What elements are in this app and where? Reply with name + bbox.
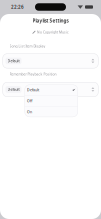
button[interactable]: On <box>24 106 78 117</box>
button[interactable]: Default <box>2 82 98 97</box>
button[interactable]: Default <box>2 53 98 68</box>
staticText: Off <box>27 98 32 103</box>
staticText: Playlist Settings <box>32 17 68 24</box>
staticText: Remember Playback Position <box>9 72 56 76</box>
staticText: Default <box>27 87 39 92</box>
staticText: No Copyright Music <box>37 30 69 34</box>
staticText: On <box>27 109 32 114</box>
button[interactable]: Off <box>24 95 78 106</box>
staticText: Song List Item Display <box>9 44 45 48</box>
staticText: Default <box>7 87 19 92</box>
staticText: Default <box>7 59 19 63</box>
button[interactable]: Default <box>24 84 78 95</box>
staticText: 22:26 <box>11 4 24 10</box>
